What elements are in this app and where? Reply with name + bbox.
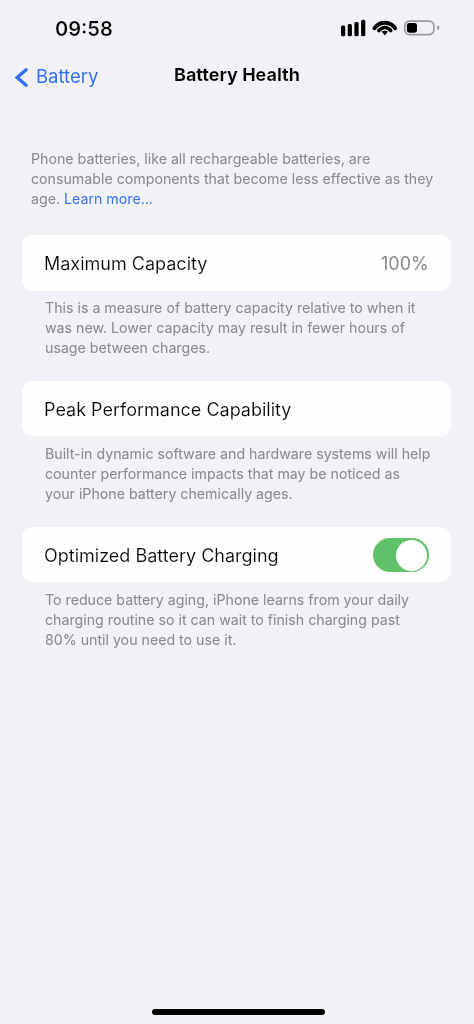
other: Battery (403, 19, 440, 37)
staticText: Maximum Capacity (44, 252, 208, 274)
staticText: Battery Health (174, 64, 300, 86)
staticText: Optimized Battery Charging (44, 544, 279, 566)
button[interactable]: Optimized Battery Charging, on (373, 538, 429, 572)
staticText: Phone batteries, like all rechargeable b… (31, 150, 437, 207)
staticText: To reduce battery aging, iPhone learns f… (45, 591, 433, 648)
staticText: This is a measure of battery capacity re… (45, 299, 433, 356)
staticText: Built-in dynamic software and hardware s… (45, 445, 433, 502)
staticText: Battery (36, 65, 99, 87)
staticText: 100% (381, 252, 429, 274)
staticText: 09:58 (55, 17, 113, 41)
button[interactable]: Maximum Capacity (22, 235, 451, 291)
button[interactable]: Peak Performance Capability (22, 381, 451, 436)
staticText: Peak Performance Capability (44, 398, 292, 420)
other: Wi-Fi (374, 19, 398, 37)
other: Cellular signal (341, 19, 366, 37)
button[interactable]: Back to Battery (3, 61, 113, 93)
button[interactable]: Learn more about battery health (62, 190, 152, 208)
